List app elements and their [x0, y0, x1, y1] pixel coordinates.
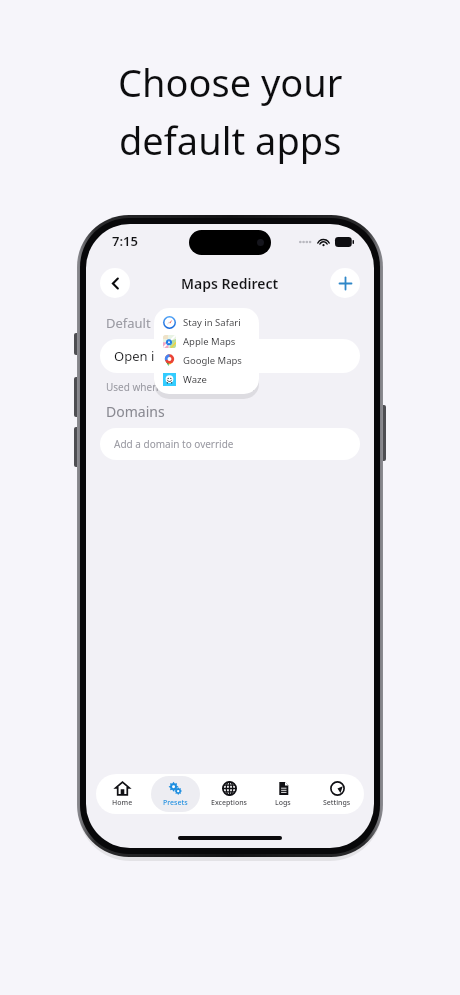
staticText: Settings [323, 798, 351, 808]
button[interactable]: Add [330, 268, 360, 298]
button[interactable]: Settings [312, 776, 362, 812]
staticText: Home [112, 798, 133, 808]
staticText: Apple Maps [183, 335, 236, 348]
staticText: Used when no domain matches [106, 380, 255, 394]
button[interactable]: Stay in Safari [154, 313, 259, 332]
button[interactable]: Home [98, 776, 147, 812]
button[interactable]: Open in [100, 339, 360, 373]
staticText: Open in [114, 347, 163, 365]
staticText: default apps [119, 114, 342, 166]
staticText: Maps Redirect [181, 274, 279, 293]
button[interactable]: Back [100, 268, 130, 298]
button[interactable]: Apple Maps [154, 332, 259, 351]
staticText: Add a domain to override [114, 437, 234, 451]
button[interactable]: Presets [151, 776, 200, 812]
staticText: Presets [163, 798, 188, 808]
button[interactable]: Add a domain to override [100, 428, 360, 460]
staticText: Exceptions [211, 798, 247, 808]
button[interactable]: Exceptions [204, 776, 254, 812]
staticText: Default [106, 314, 151, 332]
staticText: Logs [275, 798, 291, 808]
staticText: 7:15 [112, 232, 138, 250]
staticText: Google Maps [183, 354, 242, 367]
staticText: Waze [183, 373, 207, 386]
staticText: Domains [106, 402, 165, 421]
button[interactable]: Logs [258, 776, 308, 812]
button[interactable]: Waze [154, 370, 259, 389]
button[interactable]: Google Maps [154, 351, 259, 370]
staticText: Stay in Safari [183, 316, 241, 329]
staticText: Choose your [118, 56, 343, 108]
